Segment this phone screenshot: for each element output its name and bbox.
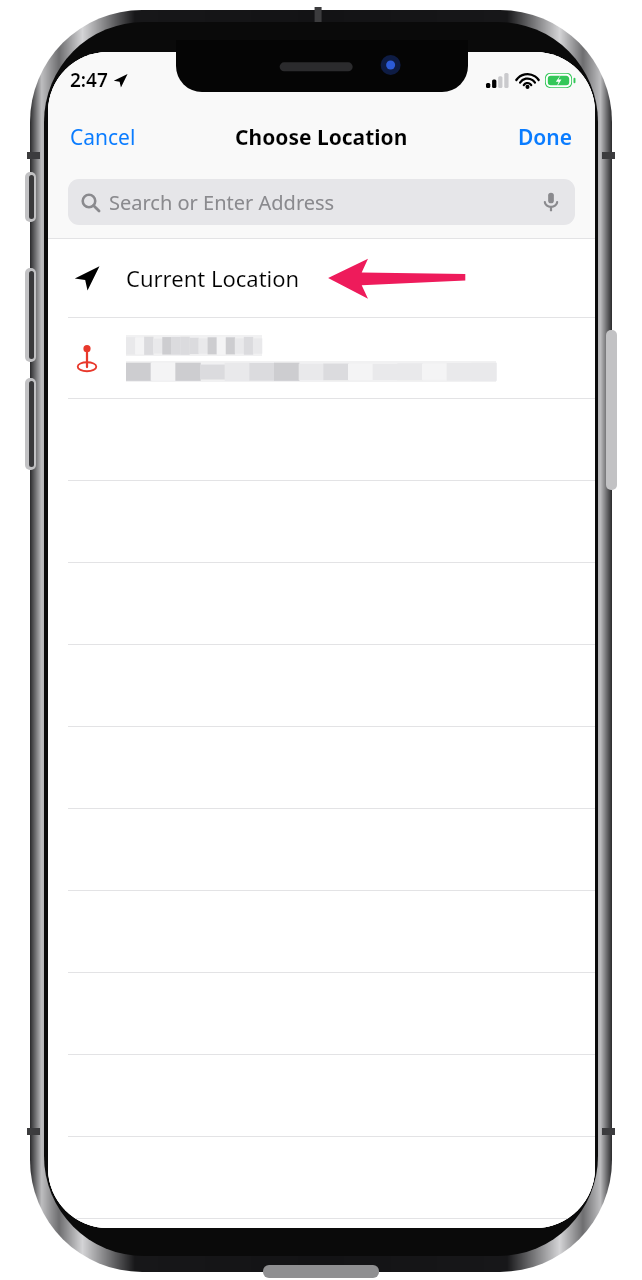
button[interactable]: Current Location: [48, 239, 595, 317]
button[interactable]: Cancel: [48, 108, 158, 166]
staticText: Done: [518, 123, 573, 152]
staticText: Current Location: [126, 263, 300, 293]
button[interactable]: Done: [496, 108, 595, 166]
button[interactable]: Search or Enter Address: [68, 179, 575, 225]
staticText: 2:47: [70, 67, 108, 93]
staticText: Cancel: [70, 123, 136, 152]
staticText: Search or Enter Address: [109, 189, 335, 216]
staticText: Choose Location: [235, 123, 408, 152]
button[interactable]: Saved address: [48, 318, 595, 398]
button[interactable]: Voice search: [540, 191, 562, 213]
